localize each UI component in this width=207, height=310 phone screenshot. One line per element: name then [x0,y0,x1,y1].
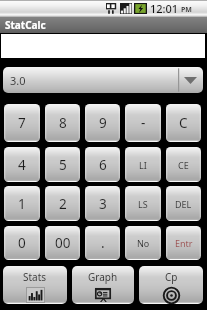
button[interactable]: 3.0 [3,67,203,93]
button[interactable]: 0 [4,226,40,260]
button[interactable]: LS [125,186,161,221]
staticText: 6 [99,156,107,174]
button[interactable]: 3 [85,186,120,221]
staticText: . [101,234,105,252]
button[interactable]: C [166,104,201,142]
button[interactable]: 5 [45,147,80,182]
button[interactable]: - [125,104,161,142]
staticText: 4 [18,156,26,174]
staticText: PM [181,5,192,15]
button[interactable]: 00 [45,226,80,260]
button[interactable]: . [85,226,120,260]
staticText: Stats [23,270,47,284]
button[interactable]: LI [125,147,161,182]
button[interactable]: 6 [85,147,120,182]
staticText: 9 [99,114,107,132]
staticText: Graph [88,270,118,284]
button[interactable]: 8 [45,104,80,142]
staticText: - [141,114,146,132]
staticText: C [179,114,188,132]
button[interactable]: DEL [166,186,201,221]
staticText: 7 [18,114,26,132]
staticText: 2 [59,195,67,213]
button[interactable]: 1 [4,186,40,221]
staticText: LS [138,198,148,210]
staticText: DEL [175,198,192,210]
button[interactable]: No [125,226,161,260]
staticText: LI [139,159,147,171]
button[interactable]: 2 [45,186,80,221]
staticText: 12:01 [150,1,179,16]
staticText: 3 [99,195,107,213]
staticText: CE [178,159,189,171]
staticText: Entr [175,237,193,249]
staticText: 3.0 [10,73,26,88]
button[interactable]: 7 [4,104,40,142]
button[interactable]: Entr [166,226,201,260]
staticText: Cp [165,270,178,284]
button[interactable]: CE [166,147,201,182]
button[interactable]: Stats [3,266,67,304]
button[interactable]: Graph [72,266,134,304]
staticText: 8 [59,114,67,132]
staticText: StatCalc [5,18,46,32]
button[interactable]: Cp [139,266,203,304]
staticText: 00 [55,234,71,252]
staticText: 1 [18,195,26,213]
button[interactable]: 9 [85,104,120,142]
staticText: 0 [18,234,26,252]
button[interactable]: 4 [4,147,40,182]
staticText: No [137,237,150,249]
staticText: 5 [59,156,67,174]
